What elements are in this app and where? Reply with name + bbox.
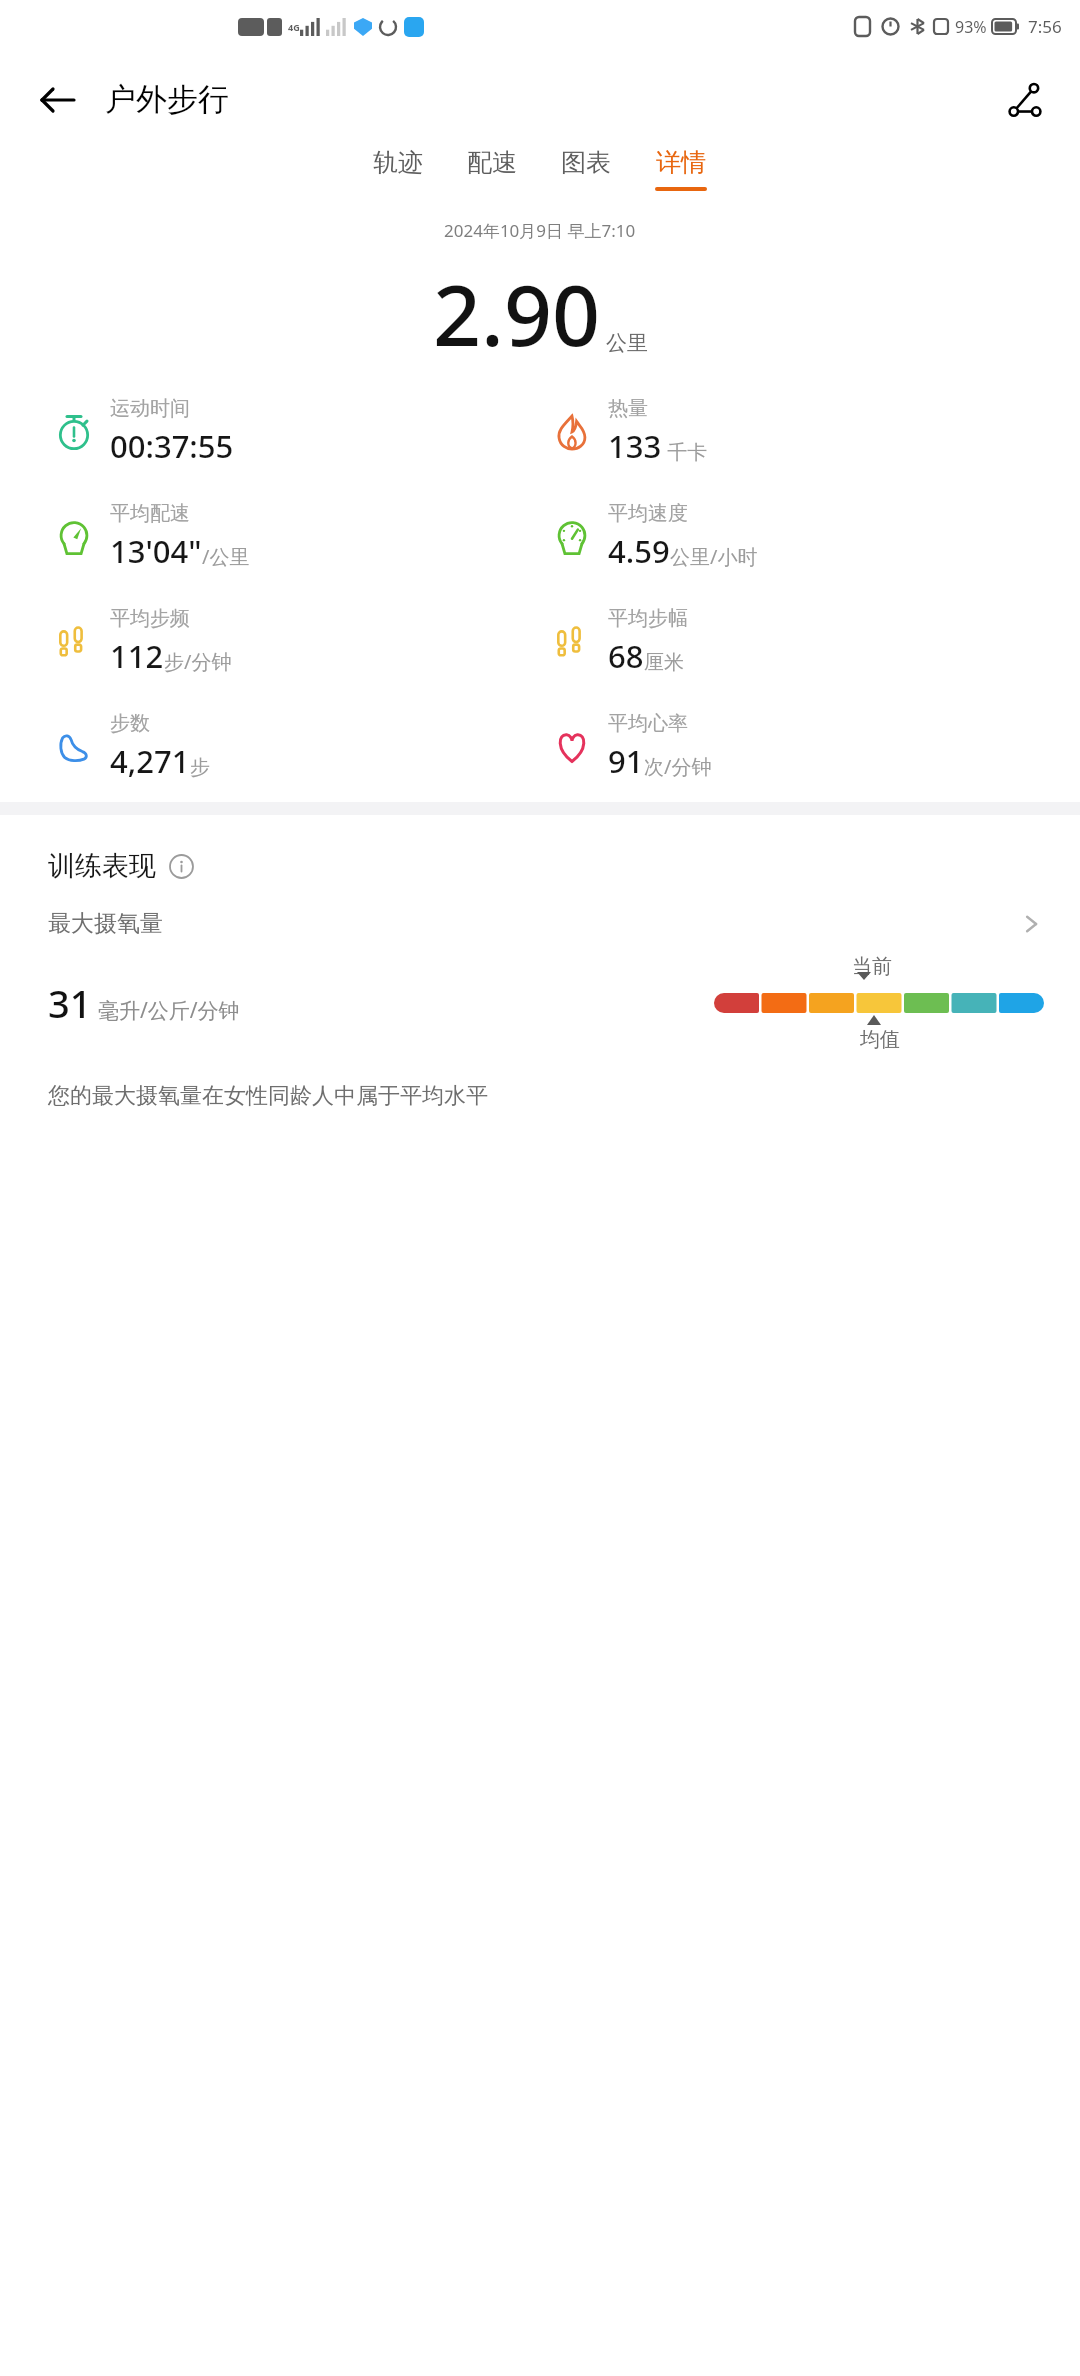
staticText: 训练表现: [48, 849, 156, 883]
button[interactable]: 分享: [998, 73, 1052, 127]
staticText: 均值: [860, 1027, 900, 1052]
staticText: 图表: [561, 147, 611, 178]
staticText: 毫升/公斤/分钟: [98, 996, 240, 1025]
button[interactable]: 配速: [467, 147, 517, 191]
staticText: 轨迹: [373, 147, 423, 178]
staticText: 步数: [110, 711, 150, 736]
staticText: 热量: [608, 396, 648, 421]
staticText: 公里: [606, 330, 648, 356]
staticText: 户外步行: [105, 80, 229, 119]
staticText: 您的最大摄氧量在女性同龄人中属于平均水平: [48, 1082, 488, 1110]
staticText: 步/分钟: [164, 648, 232, 675]
staticText: 4.59: [608, 530, 670, 572]
staticText: 13'04": [110, 530, 202, 572]
staticText: 7:56: [1028, 15, 1062, 38]
staticText: 千卡: [662, 438, 708, 465]
staticText: 31: [48, 977, 92, 1029]
staticText: 当前: [852, 954, 892, 979]
staticText: 2.90: [433, 256, 600, 370]
staticText: 133: [608, 425, 662, 467]
staticText: 4,271: [110, 740, 190, 782]
staticText: 公里/小时: [670, 543, 758, 570]
button[interactable]: 最大摄氧量: [48, 909, 1044, 938]
button[interactable]: 返回: [30, 73, 84, 127]
staticText: 次/分钟: [644, 753, 712, 780]
staticText: 平均速度: [608, 501, 688, 526]
staticText: 平均步幅: [608, 606, 688, 631]
button[interactable]: 详情: [655, 147, 707, 191]
staticText: 运动时间: [110, 396, 190, 421]
button[interactable]: 图表: [561, 147, 611, 191]
staticText: 步: [190, 755, 210, 780]
staticText: 配速: [467, 147, 517, 178]
staticText: 112: [110, 635, 164, 677]
staticText: 4G: [288, 21, 300, 33]
button[interactable]: 轨迹: [373, 147, 423, 191]
staticText: 详情: [656, 147, 706, 178]
staticText: 平均配速: [110, 501, 190, 526]
staticText: 厘米: [644, 650, 684, 675]
staticText: /公里: [202, 543, 250, 570]
staticText: 平均心率: [608, 711, 688, 736]
staticText: 00:37:55: [110, 425, 234, 467]
staticText: 91: [608, 740, 644, 782]
staticText: 最大摄氧量: [48, 909, 163, 938]
staticText: 93%: [955, 16, 987, 38]
staticText: 2024年10月9日 早上7:10: [444, 219, 636, 242]
staticText: 68: [608, 635, 644, 677]
button[interactable]: 说明: [166, 851, 196, 881]
staticText: 平均步频: [110, 606, 190, 631]
